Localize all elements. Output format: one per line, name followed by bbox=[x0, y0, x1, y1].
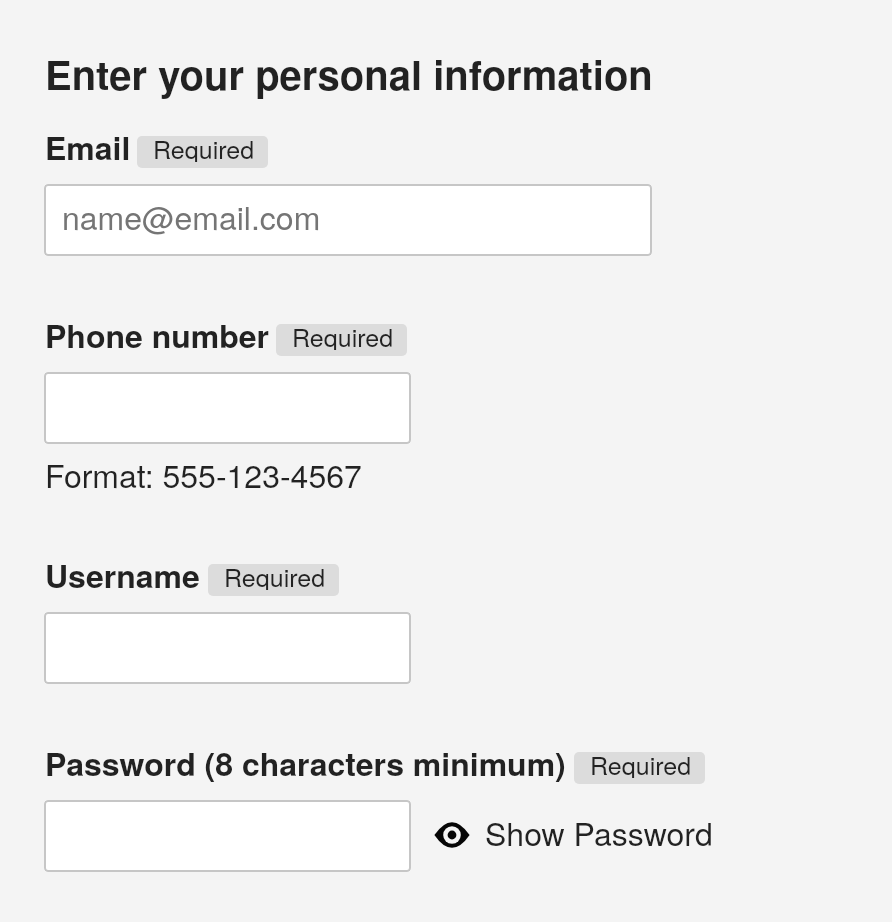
other: Show Password bbox=[432, 817, 472, 853]
button[interactable]: Required bbox=[574, 752, 705, 784]
button[interactable]: Required bbox=[137, 136, 268, 168]
staticText: Username bbox=[45, 552, 200, 598]
button[interactable]: name@email.com bbox=[44, 184, 652, 256]
staticText: Email bbox=[45, 124, 131, 170]
button[interactable] bbox=[44, 612, 411, 684]
staticText: Password (8 characters minimum) bbox=[45, 740, 566, 786]
staticText: Enter your personal information bbox=[45, 45, 653, 102]
staticText: Required bbox=[292, 324, 394, 350]
button[interactable]: Show Password bbox=[430, 813, 720, 857]
staticText: Required bbox=[153, 136, 255, 162]
staticText: Show Password bbox=[485, 809, 713, 853]
button[interactable]: Required bbox=[208, 564, 339, 596]
button[interactable] bbox=[44, 372, 411, 444]
staticText: Required bbox=[590, 752, 692, 778]
button[interactable] bbox=[44, 800, 411, 872]
staticText: Format: 555-123-4567 bbox=[45, 451, 362, 497]
staticText: Phone number bbox=[45, 312, 270, 358]
staticText: Required bbox=[224, 564, 326, 590]
button[interactable]: Required bbox=[276, 324, 407, 356]
staticText: name@email.com bbox=[62, 193, 321, 239]
